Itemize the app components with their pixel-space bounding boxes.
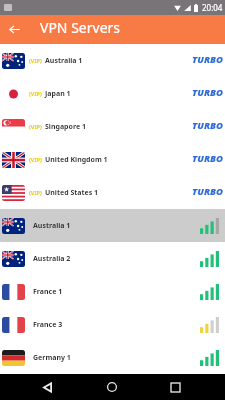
staticText: (VIP) [29, 57, 42, 64]
staticText: TURBO [192, 86, 224, 99]
staticText: France 3 [33, 320, 63, 330]
button[interactable]: France 1 [0, 275, 225, 308]
staticText: Australia 1 [33, 221, 71, 231]
staticText: United Kingdom 1 [45, 155, 108, 165]
staticText: TURBO [192, 53, 224, 66]
staticText: TURBO [192, 185, 224, 198]
staticText: (VIP) [29, 189, 42, 196]
staticText: Germany 1 [33, 353, 71, 363]
staticText: (VIP) [29, 123, 42, 130]
button[interactable]: Home [97, 374, 126, 400]
staticText: United States 1 [45, 188, 99, 198]
staticText: Australia 1 [45, 56, 83, 66]
staticText: Japan 1 [45, 89, 71, 99]
button[interactable]: (VIP) [0, 110, 225, 143]
staticText: Australia 2 [33, 254, 71, 264]
button[interactable]: Back [33, 374, 62, 400]
staticText: (VIP) [29, 90, 42, 97]
staticText: (VIP) [29, 156, 42, 163]
button[interactable]: Recent apps [161, 374, 190, 400]
staticText: TURBO [192, 119, 224, 132]
button[interactable]: Australia 2 [0, 242, 225, 275]
button[interactable]: (VIP) [0, 77, 225, 110]
button[interactable]: (VIP) [0, 176, 225, 209]
staticText: VPN Servers [40, 18, 121, 37]
staticText: Singapore 1 [45, 122, 86, 132]
button[interactable]: Back [0, 15, 28, 44]
button[interactable]: Australia 1 [0, 209, 225, 242]
button[interactable]: (VIP) [0, 44, 225, 77]
staticText: 20:04 [202, 2, 223, 13]
staticText: France 1 [33, 287, 63, 297]
button[interactable]: (VIP) [0, 143, 225, 176]
button[interactable]: France 3 [0, 308, 225, 341]
staticText: TURBO [192, 152, 224, 165]
button[interactable]: Germany 1 [0, 341, 225, 374]
